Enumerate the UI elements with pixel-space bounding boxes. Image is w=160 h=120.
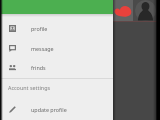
staticText: frinds [31,64,46,71]
button[interactable]: profile [0,19,113,37]
button[interactable]: frinds [0,58,113,76]
staticText: update profile [31,106,67,113]
staticText: message [31,45,54,52]
button[interactable]: update profile [0,100,113,118]
staticText: profile [31,25,48,32]
button[interactable]: message [0,39,113,57]
staticText: Account settings [8,84,51,91]
other: Account [135,0,156,21]
